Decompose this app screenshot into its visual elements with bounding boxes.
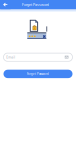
staticText: Forget Password xyxy=(22,2,49,7)
staticText: Email xyxy=(6,55,15,59)
staticText: Forget Password xyxy=(27,72,49,76)
button[interactable]: Back xyxy=(0,0,10,9)
button[interactable]: Forget Password xyxy=(3,70,72,78)
